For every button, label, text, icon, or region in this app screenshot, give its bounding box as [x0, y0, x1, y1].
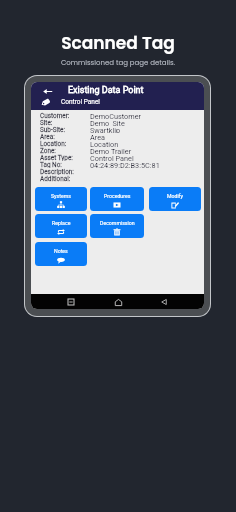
- staticText: Control Panel: [90, 154, 134, 161]
- staticText: Systems: [51, 193, 71, 199]
- button[interactable]: Modify: [149, 187, 201, 211]
- staticText: Site:: [40, 119, 90, 126]
- staticText: Additional:: [40, 175, 90, 182]
- staticText: Scanned Tag: [0, 31, 236, 55]
- button[interactable]: Notes: [35, 242, 87, 266]
- staticText: Asset Type:: [40, 154, 90, 161]
- staticText: Area: [90, 133, 106, 140]
- staticText: Modify: [167, 193, 183, 199]
- staticText: Notes: [54, 248, 68, 254]
- staticText: Location:: [40, 140, 90, 147]
- staticText: Demo_Site: [90, 119, 125, 126]
- button[interactable]: Systems: [35, 187, 87, 211]
- button[interactable]: Recent apps: [64, 295, 78, 309]
- button[interactable]: Decommission: [90, 214, 144, 238]
- staticText: Swartklip: [90, 126, 121, 133]
- staticText: Replace: [52, 220, 71, 226]
- button[interactable]: Procedures: [90, 187, 144, 211]
- staticText: Tag No:: [40, 161, 90, 168]
- staticText: Decommission: [100, 220, 135, 226]
- button[interactable]: Back: [40, 84, 54, 98]
- button[interactable]: Home: [111, 295, 125, 309]
- button[interactable]: Replace: [35, 214, 87, 238]
- staticText: Sub-Site:: [40, 126, 90, 133]
- staticText: Procedures: [104, 193, 131, 199]
- staticText: Demo Trailer: [90, 147, 132, 154]
- staticText: Zone:: [40, 147, 90, 154]
- staticText: Control Panel: [61, 98, 100, 106]
- staticText: DemoCustomer: [90, 112, 141, 119]
- staticText: Commissioned tag page details.: [0, 58, 236, 68]
- staticText: 04:24:89:D2:B3:5C:81: [90, 161, 160, 168]
- staticText: Existing Data Point: [68, 85, 144, 96]
- staticText: Area:: [40, 133, 90, 140]
- staticText: Location: [90, 140, 119, 147]
- button[interactable]: Back: [157, 295, 171, 309]
- staticText: Customer:: [40, 112, 90, 119]
- staticText: Description:: [40, 168, 90, 175]
